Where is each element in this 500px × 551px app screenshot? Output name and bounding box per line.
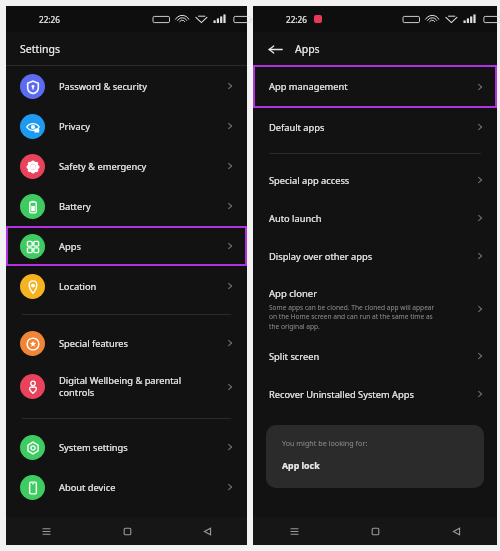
staticText: Apps: [59, 240, 81, 253]
staticText: App cloner: [269, 287, 318, 300]
staticText: Split screen: [269, 350, 320, 363]
button[interactable]: Recover Uninstalled System Apps: [253, 375, 497, 413]
staticText: 22:26: [39, 14, 60, 25]
button[interactable]: System settings: [6, 427, 247, 467]
button[interactable]: Home: [335, 517, 416, 545]
staticText: Auto launch: [269, 212, 322, 225]
staticText: Default apps: [269, 121, 325, 134]
button[interactable]: Apps: [6, 226, 247, 266]
button[interactable]: Recent apps: [253, 517, 335, 545]
staticText: You might be looking for:: [282, 438, 368, 448]
button[interactable]: Digital Wellbeing & parental controls: [6, 363, 247, 410]
staticText: Recover Uninstalled System Apps: [269, 388, 414, 401]
staticText: Settings: [20, 42, 60, 56]
staticText: Location: [59, 280, 97, 293]
button[interactable]: About device: [6, 467, 247, 507]
button[interactable]: Safety & emergency: [6, 146, 247, 186]
staticText: Display over other apps: [269, 250, 373, 263]
staticText: App management: [269, 80, 348, 93]
staticText: System settings: [59, 441, 128, 454]
staticText: Digital Wellbeing & parental controls: [59, 374, 182, 399]
button[interactable]: Auto launch: [253, 199, 497, 237]
button[interactable]: Recent apps: [6, 517, 87, 545]
button[interactable]: Privacy: [6, 106, 247, 146]
staticText: Safety & emergency: [59, 160, 147, 173]
button[interactable]: Display over other apps: [253, 237, 497, 275]
button[interactable]: App cloner: [253, 281, 497, 337]
button[interactable]: App management: [253, 65, 497, 108]
button[interactable]: You might be looking for:: [266, 425, 484, 488]
staticText: 22:26: [286, 14, 307, 25]
button[interactable]: Password & security: [6, 66, 247, 106]
staticText: Apps: [295, 42, 320, 56]
button[interactable]: Battery: [6, 186, 247, 226]
button[interactable]: Back: [253, 32, 497, 65]
staticText: Special app access: [269, 174, 350, 187]
staticText: Password & security: [59, 80, 147, 93]
button[interactable]: Special features: [6, 323, 247, 363]
button[interactable]: Location: [6, 266, 247, 306]
button[interactable]: Back: [266, 40, 284, 58]
staticText: Some apps can be cloned. The cloned app …: [269, 303, 435, 331]
staticText: Special features: [59, 337, 129, 350]
button[interactable]: Default apps: [253, 108, 497, 146]
button[interactable]: Home: [87, 517, 167, 545]
button[interactable]: Special app access: [253, 161, 497, 199]
staticText: Battery: [59, 200, 91, 213]
button[interactable]: Back: [416, 517, 497, 545]
button[interactable]: Split screen: [253, 337, 497, 375]
staticText: About device: [59, 481, 116, 494]
staticText: Privacy: [59, 120, 91, 133]
staticText: App lock: [282, 460, 320, 472]
button[interactable]: Back: [167, 517, 247, 545]
